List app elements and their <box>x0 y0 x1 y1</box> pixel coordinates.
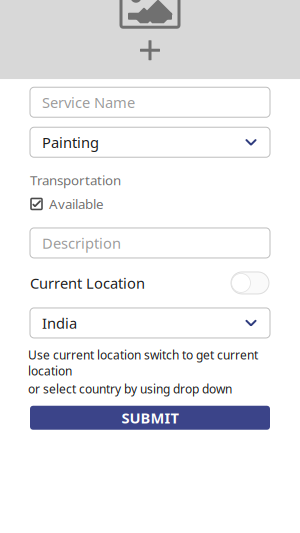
staticText: Description <box>42 233 121 253</box>
button[interactable]: Add photo <box>0 0 300 79</box>
staticText: SUBMIT <box>121 408 178 427</box>
button[interactable]: SUBMIT <box>30 406 270 430</box>
staticText: Available <box>49 195 104 213</box>
button[interactable]: Current Location <box>30 270 270 296</box>
staticText: Transportation <box>30 171 121 189</box>
staticText: Current Location <box>30 273 145 293</box>
staticText: Painting <box>42 132 99 152</box>
button[interactable]: India <box>30 308 270 338</box>
staticText: or select country by using drop down <box>28 381 232 397</box>
staticText: India <box>42 313 77 333</box>
button[interactable]: Description <box>30 228 270 258</box>
button[interactable]: Available <box>30 196 270 212</box>
staticText: Use current location switch to get curre… <box>28 347 258 379</box>
button[interactable]: Painting <box>30 127 270 157</box>
staticText: Service Name <box>42 92 135 112</box>
button[interactable]: Service Name <box>30 87 270 117</box>
